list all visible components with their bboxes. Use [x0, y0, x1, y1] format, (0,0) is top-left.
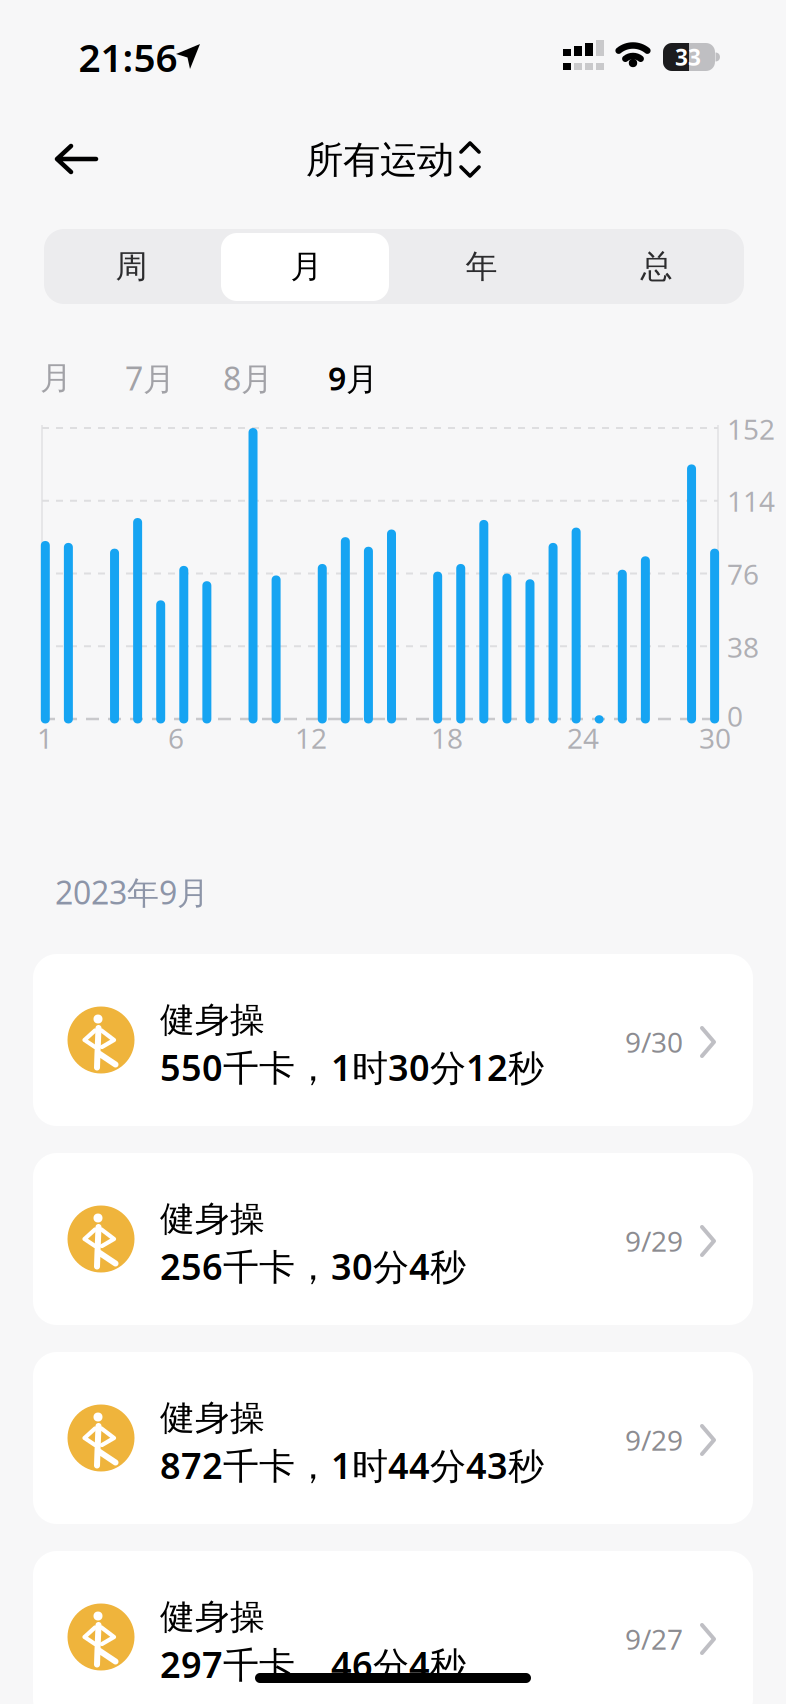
staticText: 健身操	[160, 1596, 265, 1638]
staticText: 所有运动	[306, 137, 454, 183]
button[interactable]: 健身操	[0, 0, 720, 172]
staticText: 114	[727, 482, 775, 520]
staticText: 12	[295, 719, 327, 757]
staticText: 月	[40, 358, 72, 398]
button[interactable]: 年	[394, 229, 569, 304]
staticText: 38	[727, 628, 759, 666]
staticText: 6	[168, 719, 184, 757]
button[interactable]: 周	[44, 229, 219, 304]
staticText: 9/27	[625, 1620, 683, 1658]
button[interactable]: 健身操	[0, 0, 720, 172]
staticText: 年	[465, 247, 497, 286]
staticText: 297千卡，46分4秒	[160, 1640, 466, 1688]
staticText: 1	[37, 719, 53, 757]
staticText: 9/29	[625, 1421, 683, 1459]
staticText: 550千卡，1时30分12秒	[160, 1043, 544, 1091]
staticText: 健身操	[160, 999, 265, 1041]
staticText: 24	[567, 719, 599, 757]
staticText: 76	[727, 555, 759, 593]
staticText: 8月	[223, 357, 273, 399]
staticText: 2023年9月	[55, 871, 209, 913]
staticText: 月	[290, 247, 322, 286]
staticText: 周	[115, 247, 147, 286]
staticText: 总	[640, 247, 672, 286]
staticText: 872千卡，1时44分43秒	[160, 1441, 544, 1489]
staticText: 9/30	[625, 1023, 683, 1061]
staticText: 30	[699, 719, 731, 757]
staticText: 9/29	[625, 1222, 683, 1260]
staticText: 健身操	[160, 1198, 265, 1240]
button[interactable]: 健身操	[0, 0, 720, 172]
staticText: 健身操	[160, 1397, 265, 1439]
staticText: 7月	[125, 357, 175, 399]
button[interactable]: Back	[42, 133, 108, 185]
button[interactable]: 月	[219, 229, 394, 304]
staticText: 9月	[328, 357, 378, 399]
button[interactable]: 总	[569, 229, 744, 304]
button[interactable]: 健身操	[0, 0, 720, 172]
staticText: 152	[727, 410, 775, 448]
staticText: 21:56	[78, 31, 177, 83]
staticText: 18	[431, 719, 463, 757]
staticText: 0	[727, 697, 743, 735]
button[interactable]: 所有运动	[255, 128, 505, 192]
staticText: 256千卡，30分4秒	[160, 1242, 466, 1290]
staticText: 33	[675, 42, 701, 72]
